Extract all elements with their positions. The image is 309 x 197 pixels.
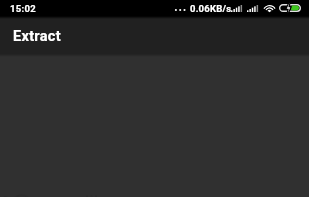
staticText: Extract [13, 28, 61, 45]
other: SIM 1 signal strength [231, 5, 243, 12]
other: More notifications [174, 0, 186, 16]
staticText: 15:02 [10, 3, 36, 14]
staticText: 0.06KB/s [190, 3, 232, 14]
button[interactable]: Extract [0, 19, 80, 54]
other: Battery charging [279, 4, 301, 12]
other: Wi-Fi connected [263, 4, 276, 12]
other: SIM 2 signal strength [247, 5, 259, 12]
